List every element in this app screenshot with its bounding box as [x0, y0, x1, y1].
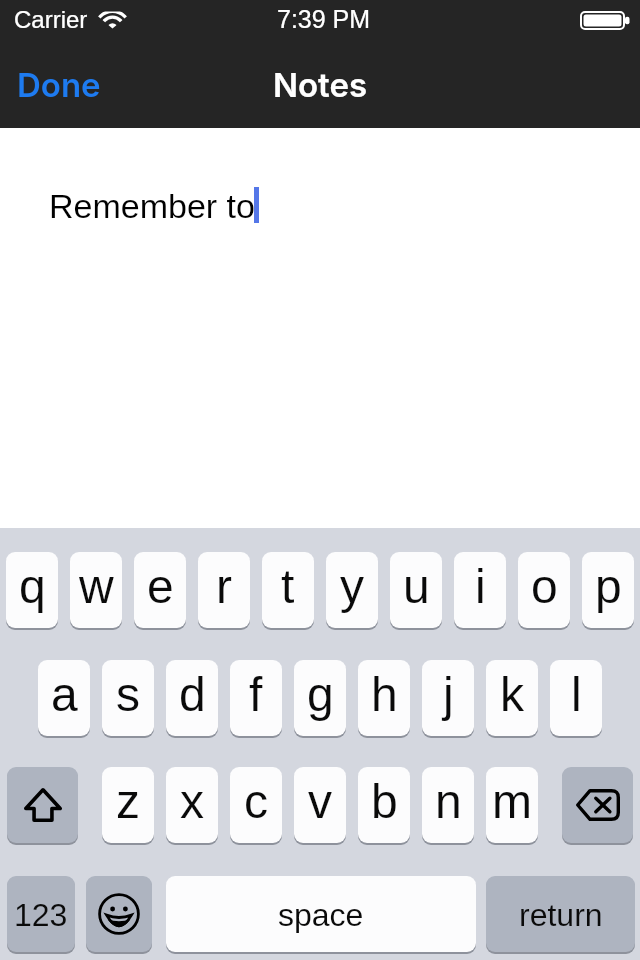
staticText: m — [492, 775, 532, 829]
staticText: Notes — [0, 65, 640, 105]
button[interactable]: z — [102, 767, 154, 843]
staticText: 7:39 PM — [277, 5, 371, 33]
staticText: g — [307, 668, 334, 722]
button[interactable]: a — [38, 660, 90, 736]
button[interactable]: v — [294, 767, 346, 843]
button[interactable]: return — [486, 876, 635, 952]
button[interactable]: Backspace — [562, 767, 633, 843]
button[interactable]: i — [454, 552, 506, 628]
staticText: Carrier — [14, 6, 88, 33]
staticText: h — [371, 668, 398, 722]
button[interactable]: p — [582, 552, 634, 628]
button[interactable]: Done — [17, 65, 101, 105]
staticText: q — [19, 560, 46, 614]
staticText: v — [308, 775, 332, 829]
staticText: Done — [17, 65, 101, 105]
staticText: z — [116, 775, 140, 829]
staticText: s — [116, 668, 140, 722]
button[interactable]: k — [486, 660, 538, 736]
button[interactable]: Emoji — [86, 876, 152, 952]
staticText: f — [249, 668, 263, 722]
button[interactable]: l — [550, 660, 602, 736]
button[interactable]: y — [326, 552, 378, 628]
button[interactable]: space — [166, 876, 476, 952]
button[interactable]: b — [358, 767, 410, 843]
button[interactable]: w — [70, 552, 122, 628]
button[interactable]: u — [390, 552, 442, 628]
staticText: t — [281, 560, 295, 614]
button[interactable]: g — [294, 660, 346, 736]
staticText: space — [278, 897, 364, 933]
button[interactable]: j — [422, 660, 474, 736]
button[interactable]: d — [166, 660, 218, 736]
button[interactable]: f — [230, 660, 282, 736]
button[interactable]: Shift — [7, 767, 78, 843]
button[interactable]: r — [198, 552, 250, 628]
staticText: c — [244, 775, 268, 829]
staticText: 123 — [14, 897, 68, 933]
button[interactable]: q — [6, 552, 58, 628]
button[interactable]: s — [102, 660, 154, 736]
staticText: l — [571, 668, 582, 722]
staticText: Remember to — [49, 187, 255, 225]
staticText: w — [79, 560, 114, 614]
button[interactable]: h — [358, 660, 410, 736]
button[interactable]: e — [134, 552, 186, 628]
button[interactable]: n — [422, 767, 474, 843]
button[interactable]: x — [166, 767, 218, 843]
staticText: r — [216, 560, 232, 614]
staticText: u — [403, 560, 430, 614]
staticText: k — [500, 668, 524, 722]
staticText: x — [180, 775, 204, 829]
button[interactable]: o — [518, 552, 570, 628]
button[interactable]: c — [230, 767, 282, 843]
staticText: p — [595, 560, 622, 614]
staticText: i — [475, 560, 486, 614]
staticText: o — [531, 560, 558, 614]
button[interactable]: 123 — [7, 876, 75, 952]
staticText: e — [147, 560, 174, 614]
button[interactable]: Note text field — [0, 128, 640, 528]
staticText: y — [340, 560, 364, 614]
staticText: n — [435, 775, 462, 829]
staticText: b — [371, 775, 398, 829]
staticText: return — [519, 897, 603, 933]
staticText: d — [179, 668, 206, 722]
button[interactable]: t — [262, 552, 314, 628]
button[interactable]: m — [486, 767, 538, 843]
staticText: a — [51, 668, 78, 722]
staticText: j — [443, 668, 454, 722]
